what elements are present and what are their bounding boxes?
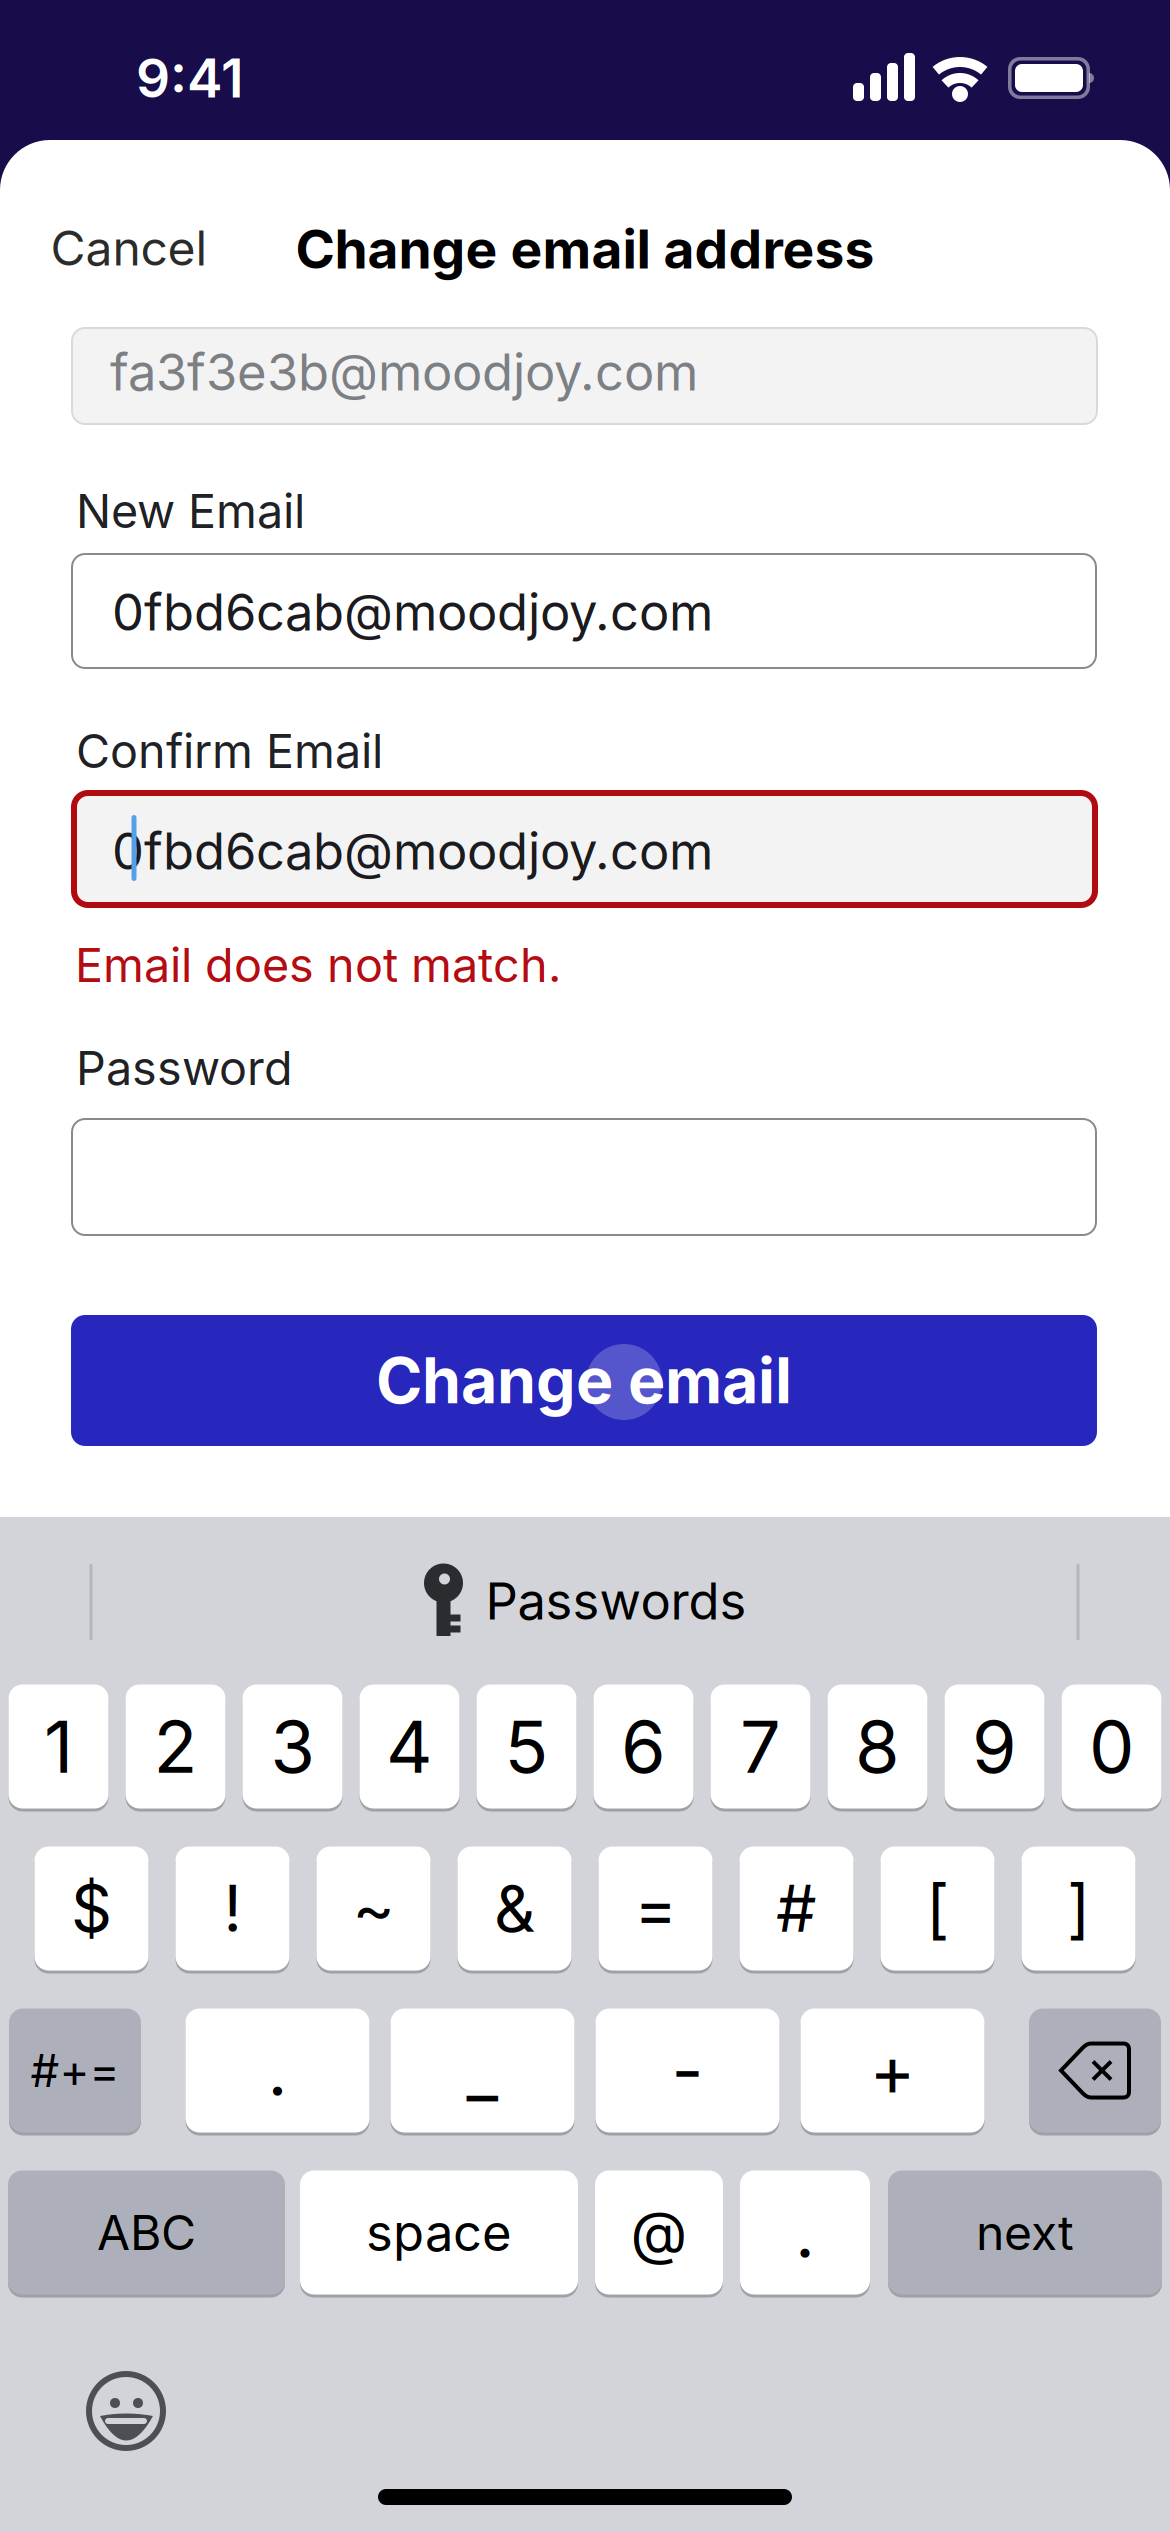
button[interactable]: Emoji bbox=[86, 2371, 166, 2451]
staticText: . bbox=[267, 2029, 287, 2112]
staticText: 6 bbox=[621, 1703, 666, 1790]
staticText: . bbox=[795, 2191, 815, 2274]
button[interactable]: _ bbox=[390, 2007, 574, 2134]
button[interactable]: #+= bbox=[9, 2007, 141, 2134]
staticText: 8 bbox=[855, 1703, 900, 1790]
button[interactable]: Delete bbox=[1029, 2007, 1161, 2134]
staticText: fa3f3e3b@moodjoy.com bbox=[110, 341, 698, 403]
button[interactable]: - bbox=[595, 2007, 779, 2134]
staticText: & bbox=[494, 1870, 535, 1947]
button[interactable]: & bbox=[457, 1845, 571, 1972]
staticText: 9:41 bbox=[136, 46, 244, 110]
button[interactable]: 1 bbox=[8, 1683, 108, 1810]
staticText: $ bbox=[71, 1870, 112, 1947]
staticText: Confirm Email bbox=[76, 723, 383, 779]
button[interactable]: ABC bbox=[8, 2169, 285, 2296]
button[interactable]: $ bbox=[34, 1845, 148, 1972]
button[interactable]: Confirm Email bbox=[71, 790, 1098, 908]
button[interactable]: 0 bbox=[1061, 1683, 1161, 1810]
staticText: 0 bbox=[1089, 1703, 1134, 1790]
button[interactable]: = bbox=[598, 1845, 712, 1972]
staticText: Cancel bbox=[50, 219, 207, 277]
staticText: - bbox=[671, 2029, 703, 2112]
staticText: [ bbox=[926, 1870, 949, 1947]
staticText: 7 bbox=[740, 1703, 781, 1790]
staticText: ! bbox=[223, 1870, 241, 1947]
staticText: + bbox=[869, 2029, 915, 2112]
button[interactable]: 6 bbox=[593, 1683, 693, 1810]
staticText: 2 bbox=[153, 1703, 197, 1790]
staticText: Change email address bbox=[295, 217, 874, 281]
button[interactable]: Passwords bbox=[423, 1563, 746, 1639]
staticText: ABC bbox=[97, 2203, 196, 2262]
button[interactable]: @ bbox=[595, 2169, 723, 2296]
button[interactable]: 4 bbox=[359, 1683, 459, 1810]
button[interactable]: # bbox=[739, 1845, 853, 1972]
button[interactable]: 9 bbox=[944, 1683, 1044, 1810]
button[interactable]: + bbox=[800, 2007, 984, 2134]
button[interactable]: space bbox=[300, 2169, 578, 2296]
staticText: # bbox=[776, 1870, 817, 1947]
staticText: Email does not match. bbox=[75, 937, 561, 993]
staticText: 9 bbox=[972, 1703, 1017, 1790]
staticText: ~ bbox=[352, 1870, 394, 1947]
button[interactable]: . bbox=[185, 2007, 369, 2134]
staticText: Password bbox=[76, 1040, 293, 1096]
staticText: 3 bbox=[270, 1703, 314, 1790]
button[interactable]: 2 bbox=[125, 1683, 225, 1810]
staticText: 0fbd6cab@moodjoy.com bbox=[112, 820, 713, 882]
button[interactable]: 5 bbox=[476, 1683, 576, 1810]
button[interactable]: 8 bbox=[827, 1683, 927, 1810]
button[interactable]: ~ bbox=[316, 1845, 430, 1972]
button[interactable]: [ bbox=[880, 1845, 994, 1972]
staticText: ] bbox=[1067, 1870, 1090, 1947]
staticText: = bbox=[634, 1870, 676, 1947]
button[interactable]: Cancel bbox=[50, 219, 207, 277]
staticText: @ bbox=[630, 2197, 687, 2268]
button[interactable]: next bbox=[888, 2169, 1162, 2296]
staticText: Passwords bbox=[485, 1570, 746, 1632]
button[interactable]: 3 bbox=[242, 1683, 342, 1810]
button[interactable]: Change email bbox=[71, 1315, 1097, 1446]
staticText: 5 bbox=[504, 1703, 548, 1790]
staticText: Change email bbox=[376, 1343, 792, 1418]
button[interactable]: 7 bbox=[710, 1683, 810, 1810]
staticText: space bbox=[366, 2202, 512, 2263]
staticText: #+= bbox=[30, 2043, 119, 2098]
staticText: 1 bbox=[44, 1703, 73, 1790]
button[interactable]: . bbox=[740, 2169, 870, 2296]
staticText: 0fbd6cab@moodjoy.com bbox=[112, 581, 713, 643]
staticText: _ bbox=[466, 2029, 498, 2112]
staticText: next bbox=[976, 2203, 1074, 2262]
button[interactable]: Password bbox=[71, 1118, 1097, 1236]
button[interactable]: New Email bbox=[71, 553, 1097, 669]
staticText: New Email bbox=[76, 483, 305, 539]
button[interactable]: ! bbox=[175, 1845, 289, 1972]
button[interactable]: ] bbox=[1021, 1845, 1135, 1972]
staticText: 4 bbox=[386, 1703, 433, 1790]
